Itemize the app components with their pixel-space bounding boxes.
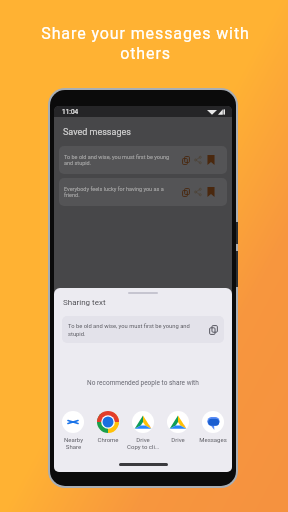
button[interactable]: Nearby Share [56, 411, 90, 450]
button[interactable]: Share [194, 155, 202, 165]
button[interactable]: To be old and wise, you must first be yo… [59, 146, 227, 174]
staticText: Nearby Share [64, 436, 83, 450]
button[interactable]: To be old and wise, you must first be yo… [62, 316, 224, 343]
button[interactable]: Bookmark [207, 155, 215, 165]
button[interactable]: Drive [160, 411, 195, 443]
staticText: Drive [171, 436, 185, 443]
staticText: Messages [199, 436, 227, 443]
button[interactable]: Copy [182, 155, 190, 165]
staticText: No recommended people to share with [87, 379, 199, 387]
staticText: Saved messages [63, 127, 131, 138]
button[interactable]: Everybody feels lucky for having you as … [59, 178, 227, 206]
staticText: Share your messages with others [40, 24, 251, 63]
button[interactable]: Share [194, 187, 202, 197]
staticText: 11:04 [62, 108, 79, 116]
button[interactable]: Chrome [90, 411, 125, 443]
staticText: To be old and wise, you must first be yo… [68, 323, 202, 337]
button[interactable]: Drive Copy to cli… [125, 411, 160, 450]
staticText: To be old and wise, you must first be yo… [64, 154, 179, 166]
button[interactable]: Copy [182, 187, 190, 197]
staticText: Everybody feels lucky for having you as … [64, 186, 179, 198]
staticText: Drive Copy to cli… [127, 436, 159, 450]
staticText: Sharing text [63, 298, 106, 307]
button[interactable]: Messages [195, 411, 230, 443]
button[interactable]: Bookmark [207, 187, 215, 197]
button[interactable]: Copy [207, 324, 219, 336]
staticText: Chrome [97, 436, 119, 443]
